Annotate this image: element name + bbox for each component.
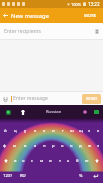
staticText: ж <box>88 143 92 149</box>
staticText: г <box>62 128 64 134</box>
staticText: ц <box>14 128 17 134</box>
button[interactable]: щ <box>76 123 85 138</box>
button[interactable]: л <box>67 138 76 153</box>
button[interactable]: р <box>49 138 58 153</box>
button[interactable]: у <box>20 123 30 138</box>
staticText: New message <box>11 12 49 20</box>
staticText: м <box>40 158 44 164</box>
staticText: SEND <box>86 96 97 102</box>
button[interactable]: ч <box>19 153 28 168</box>
staticText: % <box>79 173 83 179</box>
button[interactable]: и <box>46 153 55 168</box>
staticText: с <box>31 158 34 164</box>
button[interactable]: б <box>73 153 82 168</box>
button[interactable]: Backspace <box>91 153 103 168</box>
button[interactable]: с <box>28 153 37 168</box>
button[interactable]: й <box>0 123 10 138</box>
button[interactable]: ы <box>10 138 20 153</box>
staticText: л <box>70 143 73 149</box>
button[interactable]: г <box>58 123 67 138</box>
button[interactable]: SEND <box>82 94 101 104</box>
button[interactable]: э <box>94 138 103 153</box>
button[interactable]: ц <box>10 123 20 138</box>
button[interactable]: Shift <box>0 153 11 168</box>
staticText: ч <box>22 158 25 164</box>
staticText: й <box>4 128 7 134</box>
staticText: 100% <box>71 2 82 7</box>
button[interactable]: в <box>20 138 30 153</box>
button[interactable]: RU <box>16 168 29 183</box>
staticText: а <box>34 143 37 149</box>
button[interactable]: н <box>49 123 58 138</box>
staticText: ш <box>70 128 74 134</box>
button[interactable]: ж <box>85 138 94 153</box>
button[interactable]: м <box>37 153 46 168</box>
staticText: ф <box>3 143 7 149</box>
button[interactable]: 123? <box>0 168 16 183</box>
button[interactable]: о <box>58 138 67 153</box>
staticText: н <box>52 128 55 134</box>
button[interactable]: Back <box>0 8 11 23</box>
button[interactable]: а <box>30 138 40 153</box>
staticText: щ <box>79 128 83 134</box>
button[interactable]: е <box>40 123 49 138</box>
staticText: и <box>49 158 52 164</box>
staticText: э <box>97 143 100 149</box>
staticText: 123? <box>3 173 13 179</box>
staticText: ы <box>13 143 17 149</box>
button[interactable]: х <box>94 123 103 138</box>
staticText: Enter recipients <box>4 28 41 35</box>
staticText: п <box>43 143 46 149</box>
button[interactable]: к <box>30 123 40 138</box>
button[interactable]: Enter <box>87 168 103 183</box>
button[interactable]: д <box>76 138 85 153</box>
button[interactable]: % <box>74 168 87 183</box>
button[interactable]: Add contact <box>91 23 103 39</box>
staticText: MORE <box>84 13 97 19</box>
staticText: к <box>34 128 37 134</box>
staticText: я <box>14 158 17 164</box>
staticText: в <box>24 143 27 149</box>
button[interactable]: Emoji <box>5 109 11 115</box>
staticText: ю <box>85 158 89 164</box>
staticText: у <box>24 128 27 134</box>
button[interactable]: ш <box>67 123 76 138</box>
button[interactable]: з <box>85 123 94 138</box>
staticText: Russian <box>46 109 62 115</box>
staticText: Enter message <box>13 95 48 102</box>
staticText: ь <box>67 158 70 164</box>
button[interactable]: Settings <box>93 109 99 115</box>
button[interactable]: я <box>11 153 19 168</box>
button[interactable]: т <box>55 153 64 168</box>
staticText: з <box>88 128 91 134</box>
button[interactable]: Theme <box>82 109 88 115</box>
button[interactable]: ю <box>82 153 91 168</box>
staticText: о <box>61 143 64 149</box>
button[interactable]: Attach file <box>0 92 11 105</box>
staticText: е <box>43 128 46 134</box>
staticText: т <box>59 158 61 164</box>
staticText: RU <box>20 173 26 179</box>
staticText: х <box>97 128 100 134</box>
button[interactable]: п <box>40 138 49 153</box>
staticText: р <box>52 143 55 149</box>
button[interactable]: Stickers <box>20 109 26 115</box>
button[interactable]: ф <box>0 138 10 153</box>
button[interactable]: MORE <box>78 8 103 23</box>
staticText: б <box>76 158 79 164</box>
staticText: д <box>79 143 82 149</box>
button[interactable]: ь <box>64 153 73 168</box>
staticText: 13:22 <box>88 1 100 7</box>
